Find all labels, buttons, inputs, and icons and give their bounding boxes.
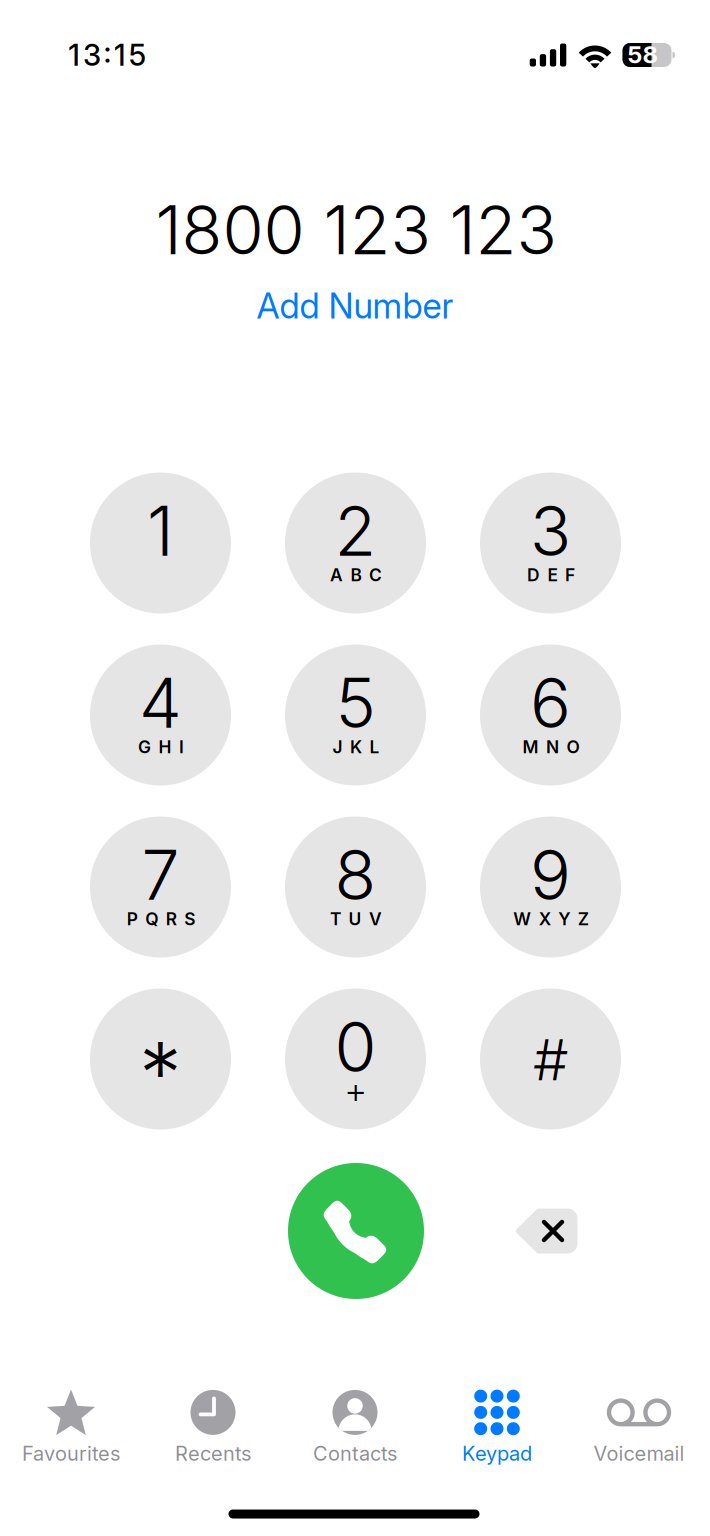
staticText: DEF <box>527 564 575 585</box>
staticText: WXYZ <box>513 908 589 929</box>
button[interactable]: 1 <box>90 472 231 613</box>
staticText: 2 <box>334 490 376 572</box>
staticText: Favourites <box>22 1441 120 1466</box>
staticText: PQRS <box>127 908 195 929</box>
button[interactable]: Delete <box>486 1176 606 1286</box>
button[interactable]: 3 <box>480 472 621 613</box>
staticText: 7 <box>141 834 179 916</box>
staticText: 8 <box>334 834 376 916</box>
button[interactable]: 8 <box>285 816 426 957</box>
button[interactable]: # <box>480 988 621 1129</box>
staticText: 9 <box>530 834 571 916</box>
staticText: Keypad <box>462 1441 532 1466</box>
staticText: 0 <box>334 1006 376 1088</box>
button[interactable]: 2 <box>285 472 426 613</box>
staticText: # <box>533 1026 568 1094</box>
staticText: 5 <box>335 662 375 744</box>
button[interactable]: 6 <box>480 644 621 785</box>
staticText: Contacts <box>313 1441 397 1466</box>
button[interactable]: * <box>90 988 231 1129</box>
button[interactable]: 5 <box>285 644 426 785</box>
button[interactable]: Call <box>288 1163 424 1299</box>
staticText: 3 <box>530 490 571 572</box>
button[interactable]: Recents <box>142 1388 284 1466</box>
staticText: 13:15 <box>68 37 146 73</box>
staticText: ABC <box>330 564 382 585</box>
button[interactable]: 7 <box>90 816 231 957</box>
button[interactable]: Favourites <box>0 1388 142 1466</box>
button[interactable]: 0 <box>285 988 426 1129</box>
staticText: Add Number <box>256 285 453 327</box>
button[interactable]: Voicemail <box>568 1388 710 1466</box>
staticText: GHI <box>138 736 184 757</box>
staticText: 1 <box>147 490 174 572</box>
staticText: Recents <box>175 1441 251 1466</box>
staticText: * <box>139 1021 182 1125</box>
button[interactable]: 9 <box>480 816 621 957</box>
staticText: 4 <box>139 662 182 744</box>
staticText: 58 <box>627 40 657 69</box>
button[interactable]: Add Number <box>246 279 463 333</box>
button[interactable]: Keypad <box>426 1388 568 1466</box>
staticText: + <box>344 1068 366 1112</box>
button[interactable]: Contacts <box>284 1388 426 1466</box>
button[interactable]: 4 <box>90 644 231 785</box>
staticText: Voicemail <box>593 1441 684 1466</box>
staticText: 6 <box>530 662 571 744</box>
staticText: MNO <box>522 736 579 757</box>
staticText: JKL <box>332 736 379 757</box>
staticText: TUV <box>330 908 382 929</box>
staticText: 1800 123 123 <box>155 190 556 270</box>
